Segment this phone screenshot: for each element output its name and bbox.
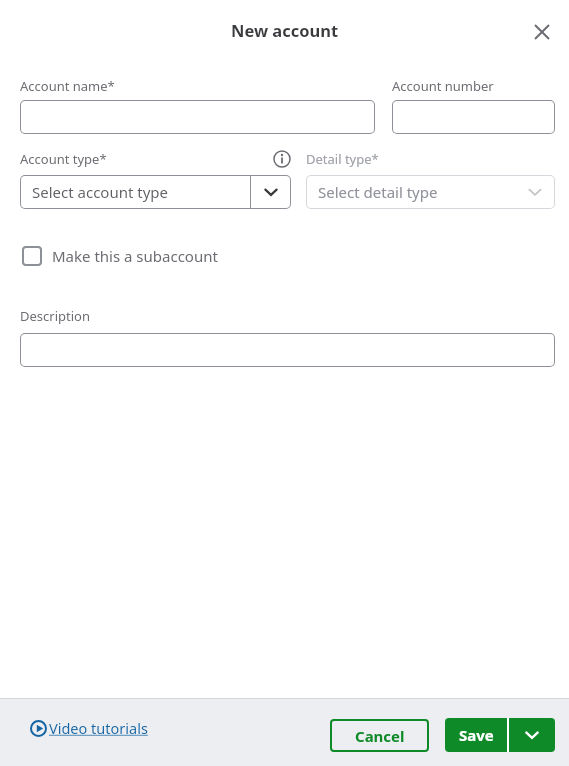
staticText: Account type*: [20, 150, 107, 168]
staticText: Account name*: [20, 77, 115, 95]
staticText: Detail type*: [306, 150, 379, 168]
staticText: New account: [231, 19, 339, 41]
staticText: Description: [20, 307, 90, 325]
staticText: Select detail type: [318, 182, 438, 202]
staticText: Cancel: [355, 726, 405, 746]
staticText: Account number: [392, 77, 494, 95]
staticText: Select account type: [32, 182, 169, 202]
staticText: Video tutorials: [49, 718, 148, 738]
staticText: Make this a subaccount: [52, 246, 218, 266]
staticText: Save: [459, 725, 494, 745]
